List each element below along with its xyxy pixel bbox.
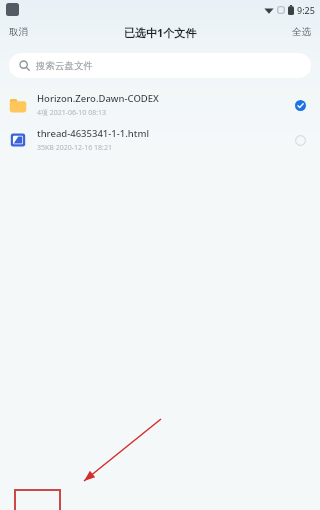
staticText: 全选 <box>292 26 311 38</box>
staticText: 已选中1个文件 <box>124 25 197 40</box>
staticText: 取消 <box>9 26 28 38</box>
button[interactable]: 取消 <box>0 22 37 42</box>
button[interactable]: Not selected <box>289 129 311 151</box>
staticText: Horizon.Zero.Dawn-CODEX <box>37 92 159 105</box>
staticText: 搜索云盘文件 <box>36 60 93 72</box>
button[interactable]: thread-4635341-1-1.html <box>0 122 320 157</box>
button[interactable]: Horizon.Zero.Dawn-CODEX <box>0 87 320 122</box>
staticText: 4项 2021-06-10 08:13 <box>37 108 107 118</box>
staticText: thread-4635341-1-1.html <box>37 127 149 140</box>
button[interactable]: 搜索云盘文件 <box>9 53 311 78</box>
staticText: 35KB 2020-12-16 18:21 <box>37 143 112 153</box>
button[interactable]: 全选 <box>283 22 320 42</box>
staticText: 9:25 <box>297 4 315 16</box>
button[interactable]: Selected <box>289 94 311 116</box>
